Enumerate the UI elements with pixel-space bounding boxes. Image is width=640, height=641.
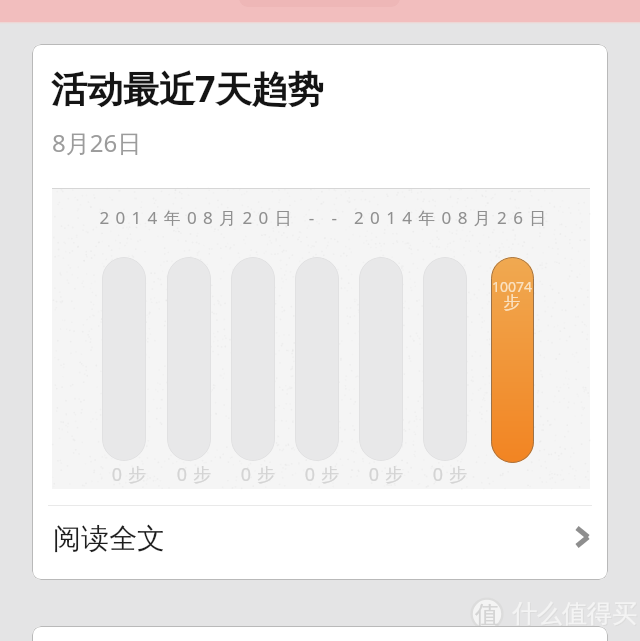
staticText: 10074	[480, 277, 544, 296]
button[interactable]	[32, 44, 608, 580]
staticText: 8月26日	[52, 126, 142, 159]
staticText: 0步	[229, 462, 293, 487]
staticText: 什么值得买	[513, 599, 638, 630]
button[interactable]	[32, 626, 608, 641]
staticText: 0步	[357, 462, 421, 487]
staticText: 0步	[293, 462, 357, 487]
staticText: 活动最近7天趋势	[51, 64, 324, 113]
staticText: 阅读全文	[53, 521, 165, 556]
other: 阅读全文	[575, 526, 590, 548]
staticText: 步	[480, 292, 544, 313]
staticText: 0步	[100, 462, 164, 487]
staticText: 0步	[421, 462, 485, 487]
staticText: 0步	[165, 462, 229, 487]
staticText: 值	[470, 600, 504, 630]
other: 什么值得买	[470, 597, 504, 631]
button[interactable]: 阅读全文	[32, 506, 608, 577]
staticText: 什么值得买	[512, 598, 637, 629]
staticText: 2014年08月20日 - - 2014年08月26日	[57, 206, 595, 229]
